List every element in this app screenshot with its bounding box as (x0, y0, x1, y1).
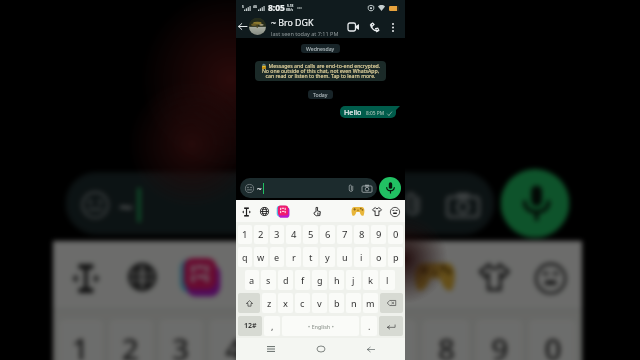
button[interactable]: Back (363, 341, 379, 357)
button[interactable]: Enter (379, 316, 403, 336)
staticText: 4 (291, 228, 297, 241)
staticText: . (368, 320, 371, 332)
button[interactable]: Video call (345, 19, 361, 35)
button[interactable]: u (337, 247, 352, 267)
button[interactable]: Recent apps (263, 341, 279, 357)
staticText: t (309, 251, 313, 263)
button[interactable]: 2 (109, 319, 153, 360)
button[interactable]: Games (350, 205, 365, 217)
button[interactable]: r (286, 247, 301, 267)
button[interactable]: 🔒 Messages and calls are end-to-end encr… (255, 61, 386, 81)
button[interactable]: ~ Bro DGK (271, 17, 345, 37)
button[interactable]: w (254, 247, 268, 267)
button[interactable]: Voice message (501, 169, 569, 238)
button[interactable]: y (320, 247, 335, 267)
button[interactable]: 1 (238, 225, 252, 244)
button[interactable]: ~ (65, 172, 494, 235)
button[interactable]: Clipboard (310, 205, 323, 218)
button[interactable]: a (245, 270, 259, 290)
button[interactable]: Today (308, 90, 333, 99)
staticText: 5 (278, 329, 297, 360)
button[interactable]: Voice call (366, 19, 382, 35)
staticText: y (325, 251, 330, 263)
staticText: KB/s (286, 8, 294, 12)
button[interactable]: Home (313, 341, 329, 357)
button[interactable]: Clothing stickers (370, 205, 383, 218)
button[interactable]: 0 (529, 319, 576, 360)
button[interactable]: 9 (371, 225, 386, 244)
staticText: 3 (274, 228, 280, 241)
button[interactable]: 2 (254, 225, 268, 244)
button[interactable]: g (312, 270, 327, 290)
staticText: 2 (122, 329, 141, 360)
staticText: 8:05 PM (366, 110, 385, 117)
button[interactable]: Wednesday (301, 44, 340, 53)
button[interactable]: Stickers (276, 204, 290, 218)
button[interactable]: t (303, 247, 318, 267)
button[interactable]: b (329, 293, 344, 313)
button[interactable]: Back (236, 20, 249, 33)
button[interactable]: , (264, 316, 280, 336)
button[interactable]: 9 (476, 319, 522, 360)
button[interactable]: ~ (240, 178, 377, 198)
button[interactable]: Games (410, 257, 457, 294)
button[interactable]: j (346, 270, 361, 290)
button[interactable]: 8 (354, 225, 369, 244)
button[interactable]: x (278, 293, 293, 313)
button[interactable]: 7 (369, 319, 416, 360)
button[interactable]: Text editing (240, 205, 253, 218)
button[interactable]: 3 (270, 225, 284, 244)
button[interactable]: m (363, 293, 378, 313)
button[interactable]: q (238, 247, 252, 267)
button[interactable]: 5 (303, 225, 318, 244)
staticText: e (274, 251, 280, 263)
button[interactable]: k (363, 270, 378, 290)
button[interactable]: Text editing (65, 257, 106, 297)
button[interactable]: Emoji (529, 257, 569, 297)
button[interactable]: More options (386, 20, 400, 34)
button[interactable]: 7 (337, 225, 352, 244)
button[interactable]: Voice message (379, 177, 401, 199)
button[interactable]: e (270, 247, 284, 267)
button[interactable]: Emoji (388, 205, 401, 218)
button[interactable]: Stickers (178, 253, 222, 297)
staticText: , (271, 320, 274, 332)
button[interactable]: 5 (263, 319, 310, 360)
button[interactable]: f (295, 270, 310, 290)
button[interactable]: c (295, 293, 310, 313)
button[interactable]: Backspace (380, 293, 403, 313)
button[interactable]: 6 (316, 319, 363, 360)
button[interactable]: Hello (340, 106, 396, 118)
button[interactable]: h (329, 270, 344, 290)
button[interactable]: 6 (320, 225, 335, 244)
button[interactable]: Change language (122, 257, 163, 297)
button[interactable]: s (261, 270, 276, 290)
button[interactable]: i (354, 247, 369, 267)
button[interactable]: 3 (159, 319, 203, 360)
button[interactable]: 0 (388, 225, 403, 244)
staticText: u (342, 251, 348, 263)
button[interactable]: Change language (258, 205, 271, 218)
button[interactable]: Profile photo (249, 18, 266, 35)
staticText: 9 (491, 329, 510, 360)
button[interactable]: 12# (238, 316, 262, 336)
button[interactable]: 4 (209, 319, 256, 360)
button[interactable]: 8 (422, 319, 469, 360)
button[interactable]: d (278, 270, 293, 290)
button[interactable]: Clothing stickers (472, 257, 513, 297)
button[interactable]: 1 (59, 319, 103, 360)
staticText: s (266, 274, 271, 286)
button[interactable]: v (312, 293, 327, 313)
button[interactable]: o (371, 247, 386, 267)
button[interactable]: Shift (238, 293, 260, 313)
button[interactable]: Clipboard (285, 257, 325, 297)
button[interactable]: . (361, 316, 377, 336)
staticText: q (242, 251, 248, 263)
button[interactable]: l (380, 270, 395, 290)
button[interactable]: z (262, 293, 276, 313)
button[interactable]: n (346, 293, 361, 313)
staticText: d (283, 274, 289, 286)
button[interactable]: p (388, 247, 403, 267)
button[interactable]: 4 (286, 225, 301, 244)
button[interactable]: • English • (282, 316, 359, 336)
